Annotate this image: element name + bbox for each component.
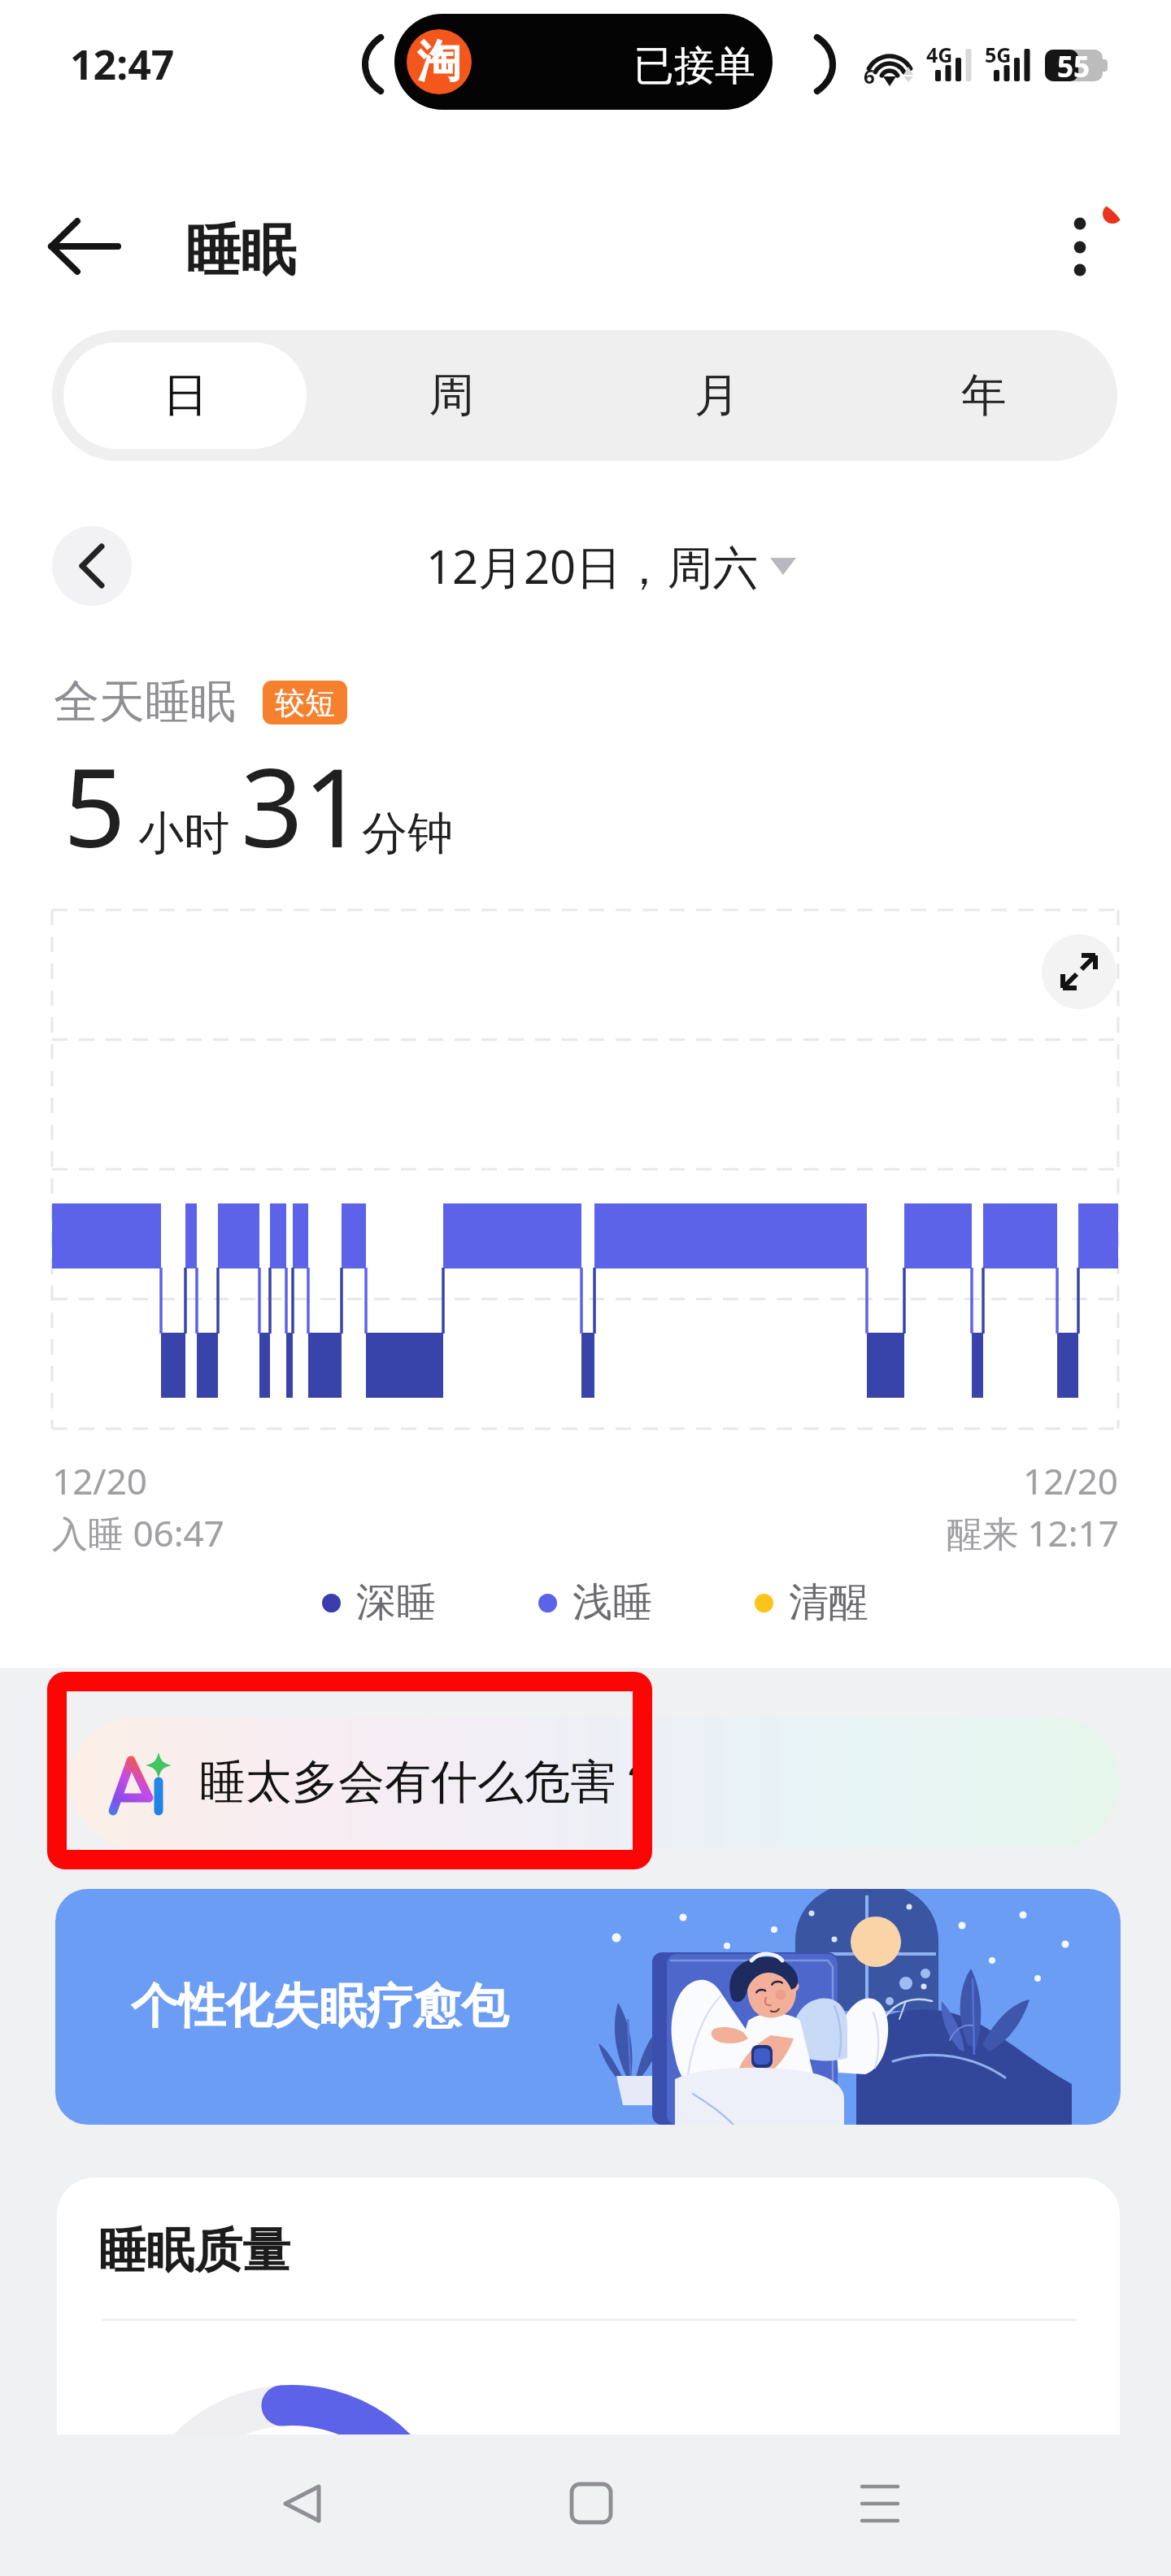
button[interactable]: Previous day [52,526,132,606]
staticText: 较短 [275,684,335,722]
button[interactable]: More options [1031,198,1129,296]
staticText: 淘 [417,34,461,89]
staticText: 已接单 [633,41,755,92]
staticText: 睡眠质量 [98,2221,290,2281]
staticText: 清醒 [789,1577,868,1628]
staticText: 入睡 06:47 [52,1508,224,1557]
staticText: 12:47 [70,37,175,92]
staticText: 睡眠 [185,216,296,286]
button[interactable]: 月 [584,330,851,461]
staticText: 全天睡眠 [54,673,236,731]
button[interactable]: 个性化失眠疗愈包 [55,1889,1121,2125]
staticText: 6 [864,63,875,89]
staticText: 55 [1057,47,1090,86]
staticText: 睡太多会有什么危害？ [199,1753,663,1812]
staticText: 浅睡 [572,1577,652,1628]
staticText: 分钟 [362,805,453,863]
staticText: 日 [163,367,208,424]
staticText: 12月20日，周六 [426,535,759,597]
button[interactable]: Back [39,202,128,291]
button[interactable]: 睡太多会有什么危害？ [69,1717,1120,1847]
staticText: 5G [985,41,1012,68]
button[interactable]: Recents [823,2447,937,2561]
staticText: 5 [63,731,126,880]
button[interactable]: Back [246,2447,359,2561]
button[interactable]: 周 [318,330,584,461]
staticText: 月 [694,367,740,424]
staticText: 年 [961,367,1007,424]
staticText: 4G [926,41,953,68]
button[interactable]: Expand chart [1042,934,1117,1009]
staticText: 12/20 [1023,1456,1119,1505]
staticText: 个性化失眠疗愈包 [131,1977,508,2036]
staticText: 12/20 [52,1456,148,1505]
button[interactable]: 年 [851,330,1117,461]
button[interactable]: 日 [63,342,307,449]
staticText: 小时 [138,805,229,863]
staticText: 醒来 12:17 [947,1508,1119,1557]
staticText: 深睡 [356,1577,436,1628]
staticText: 周 [429,367,474,424]
staticText: 31 [241,731,366,880]
button[interactable]: Home [534,2447,648,2561]
